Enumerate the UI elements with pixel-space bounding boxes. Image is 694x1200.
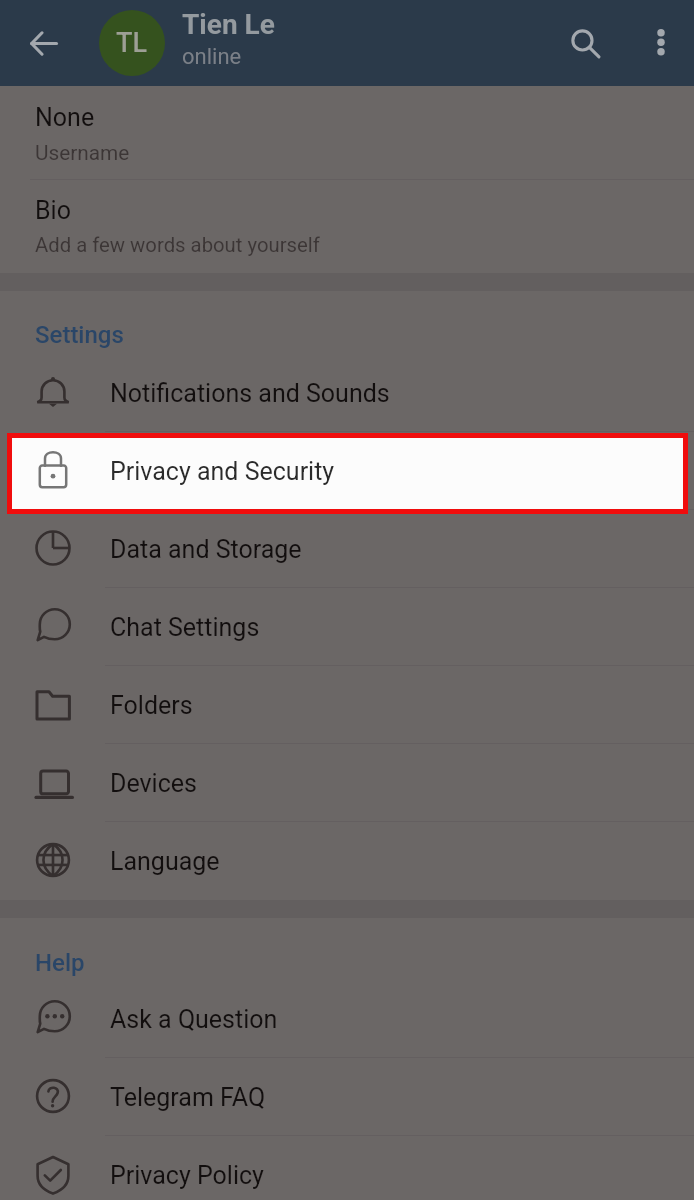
button[interactable]: Language	[0, 821, 694, 899]
staticText: Privacy and Security	[110, 457, 335, 486]
staticText: TL	[116, 27, 148, 59]
staticText: Add a few words about yourself	[35, 233, 320, 257]
button[interactable]: Chat Settings	[0, 587, 694, 665]
button[interactable]: Search	[548, 0, 622, 86]
button[interactable]: Devices	[0, 743, 694, 821]
staticText: Language	[110, 847, 220, 876]
staticText: Username	[35, 141, 130, 165]
button[interactable]: Notifications and Sounds	[0, 353, 694, 431]
button[interactable]: Folders	[0, 665, 694, 743]
staticText: Tien Le	[182, 8, 275, 41]
button[interactable]: Data and Storage	[0, 509, 694, 587]
staticText: online	[182, 44, 242, 70]
staticText: Privacy Policy	[110, 1161, 264, 1190]
staticText: Folders	[110, 691, 193, 720]
button[interactable]: TL	[99, 10, 165, 76]
button[interactable]: Privacy Policy	[0, 1135, 694, 1200]
staticText: None	[35, 103, 95, 132]
staticText: Help	[35, 949, 85, 977]
button[interactable]: Ask a Question	[0, 979, 694, 1057]
staticText: Devices	[110, 769, 197, 798]
button[interactable]: Back	[5, 0, 82, 86]
staticText: Telegram FAQ	[110, 1083, 266, 1112]
button[interactable]: More options	[627, 0, 693, 86]
staticText: Bio	[35, 196, 71, 225]
staticText: Ask a Question	[110, 1005, 278, 1034]
staticText: Data and Storage	[110, 535, 302, 564]
button[interactable]	[0, 431, 694, 509]
staticText: Notifications and Sounds	[110, 379, 390, 408]
staticText: Settings	[35, 321, 124, 349]
staticText: Chat Settings	[110, 613, 260, 642]
button[interactable]: Privacy and Security	[12, 438, 683, 509]
button[interactable]: Telegram FAQ	[0, 1057, 694, 1135]
